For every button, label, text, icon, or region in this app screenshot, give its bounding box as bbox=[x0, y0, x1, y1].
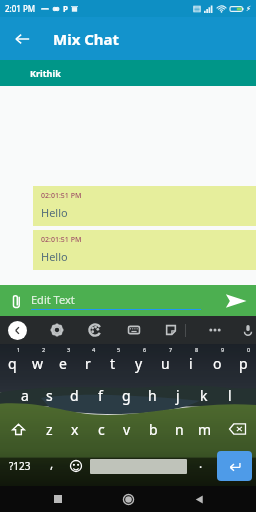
staticText: t bbox=[110, 354, 116, 373]
button[interactable]: 02:01:51 PM bbox=[33, 186, 256, 226]
button[interactable]: 2 bbox=[25, 344, 50, 378]
staticText: l bbox=[228, 386, 232, 405]
button[interactable]: v bbox=[114, 412, 140, 446]
staticText: v bbox=[123, 420, 131, 439]
staticText: q bbox=[8, 354, 17, 373]
staticText: 7 bbox=[169, 346, 173, 353]
button[interactable]: 6 bbox=[126, 344, 152, 378]
button[interactable]: a bbox=[12, 378, 37, 412]
staticText: c bbox=[98, 420, 105, 439]
staticText: Mix Chat bbox=[53, 29, 120, 49]
staticText: ⚡ bbox=[246, 5, 251, 13]
staticText: j bbox=[176, 386, 180, 405]
button[interactable]: j bbox=[165, 378, 191, 412]
staticText: e bbox=[59, 354, 67, 373]
staticText: 3 bbox=[67, 346, 71, 353]
button[interactable]: , bbox=[40, 446, 64, 486]
button[interactable]: s bbox=[37, 378, 62, 412]
button[interactable]: Back bbox=[186, 486, 212, 512]
button[interactable]: c bbox=[88, 412, 114, 446]
button[interactable]: h bbox=[139, 378, 165, 412]
button[interactable]: Recent apps bbox=[45, 486, 71, 512]
staticText: , bbox=[50, 455, 54, 471]
staticText: 0 bbox=[247, 346, 251, 353]
staticText: y bbox=[135, 354, 143, 373]
button[interactable]: Stickers bbox=[161, 320, 181, 340]
staticText: f bbox=[98, 386, 103, 405]
staticText: i bbox=[189, 354, 193, 373]
staticText: b bbox=[149, 420, 158, 439]
button[interactable]: Enter bbox=[217, 451, 252, 481]
staticText: Hello bbox=[41, 205, 68, 220]
staticText: u bbox=[161, 354, 170, 373]
staticText: P bbox=[63, 3, 68, 14]
staticText: . bbox=[199, 455, 203, 471]
staticText: 1 bbox=[17, 346, 21, 353]
staticText: g bbox=[122, 386, 131, 405]
staticText: r bbox=[85, 354, 91, 373]
button[interactable]: 4 bbox=[75, 344, 100, 378]
button[interactable]: b bbox=[140, 412, 166, 446]
button[interactable]: Back bbox=[8, 25, 36, 53]
staticText: 02:01:51 PM bbox=[41, 191, 82, 201]
staticText: 6 bbox=[143, 346, 147, 353]
staticText: z bbox=[46, 420, 53, 439]
button[interactable]: d bbox=[62, 378, 87, 412]
button[interactable]: Emoji bbox=[64, 446, 88, 486]
staticText: o bbox=[213, 354, 222, 373]
staticText: a bbox=[21, 386, 29, 405]
button[interactable]: ?123 bbox=[0, 446, 40, 486]
staticText: 4 bbox=[92, 346, 96, 353]
button[interactable]: f bbox=[87, 378, 113, 412]
button[interactable]: Home bbox=[115, 486, 141, 512]
button[interactable]: 0 bbox=[230, 344, 256, 378]
button[interactable]: . bbox=[189, 446, 213, 486]
staticText: x bbox=[71, 420, 79, 439]
staticText: 2:01 PM bbox=[5, 3, 36, 14]
staticText: 02:01:51 PM bbox=[41, 235, 82, 245]
button[interactable]: More options bbox=[205, 320, 225, 340]
button[interactable]: k bbox=[191, 378, 217, 412]
button[interactable]: 5 bbox=[100, 344, 126, 378]
button[interactable]: Attach file bbox=[4, 289, 28, 313]
staticText: m bbox=[198, 420, 212, 439]
staticText: 8 bbox=[195, 346, 199, 353]
staticText: Hello bbox=[41, 249, 68, 264]
staticText: w bbox=[32, 354, 44, 373]
button[interactable]: Backspace bbox=[218, 412, 256, 446]
button[interactable]: n bbox=[166, 412, 192, 446]
staticText: k bbox=[200, 386, 208, 405]
staticText: 2 bbox=[42, 346, 46, 353]
button[interactable]: 8 bbox=[178, 344, 204, 378]
button[interactable]: 3 bbox=[50, 344, 75, 378]
staticText: Krithik bbox=[30, 67, 61, 79]
button[interactable]: Edit Text bbox=[31, 292, 201, 310]
staticText: ?123 bbox=[9, 459, 31, 473]
staticText: d bbox=[70, 386, 79, 405]
staticText: Edit Text bbox=[31, 292, 75, 307]
button[interactable]: Voice input bbox=[238, 320, 256, 340]
button[interactable]: Theme bbox=[85, 320, 105, 340]
button[interactable]: m bbox=[192, 412, 218, 446]
staticText: n bbox=[175, 420, 184, 439]
staticText: h bbox=[148, 386, 157, 405]
staticText: s bbox=[46, 386, 53, 405]
button[interactable]: Settings bbox=[47, 320, 67, 340]
button[interactable]: Keyboard layout bbox=[124, 320, 144, 340]
button[interactable]: x bbox=[62, 412, 88, 446]
button[interactable]: Send bbox=[222, 287, 250, 315]
button[interactable]: Back bbox=[8, 321, 27, 340]
staticText: p bbox=[239, 354, 248, 373]
button[interactable]: 02:01:51 PM bbox=[33, 230, 256, 270]
button[interactable]: Shift bbox=[0, 412, 37, 446]
button[interactable]: z bbox=[37, 412, 62, 446]
staticText: 9 bbox=[221, 346, 225, 353]
button[interactable]: 7 bbox=[152, 344, 178, 378]
button[interactable]: g bbox=[113, 378, 139, 412]
button[interactable]: l bbox=[217, 378, 243, 412]
staticText: 5 bbox=[117, 346, 121, 353]
button[interactable]: 1 bbox=[0, 344, 25, 378]
button[interactable]: Krithik bbox=[0, 60, 256, 86]
button[interactable]: 9 bbox=[204, 344, 230, 378]
